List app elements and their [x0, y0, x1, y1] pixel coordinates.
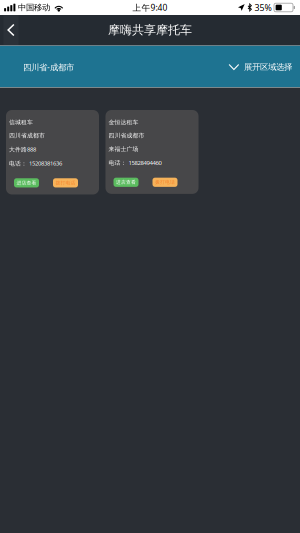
staticText: 进店查看	[116, 179, 136, 185]
button[interactable]: 信城租车	[6, 110, 99, 194]
staticText: 拨打电话	[155, 179, 175, 185]
staticText: 进店查看	[16, 180, 36, 186]
staticText: 来福士广场	[108, 145, 138, 153]
staticText: 上午9:40	[132, 2, 167, 13]
staticText: 信城租车	[9, 118, 33, 126]
button[interactable]: 进店查看	[113, 178, 138, 187]
button[interactable]: 展开区域选择	[228, 62, 292, 72]
staticText: 中国移动	[18, 2, 50, 13]
button[interactable]: 金恒达租车	[105, 110, 198, 194]
button[interactable]: 进店查看	[14, 178, 39, 187]
staticText: 四川省成都市	[108, 132, 144, 139]
staticText: 摩嗨共享摩托车	[108, 22, 192, 37]
staticText: 35%	[254, 1, 271, 13]
button[interactable]: 拨打电话	[152, 178, 177, 187]
staticText: 四川省-成都市	[23, 61, 74, 73]
button[interactable]: 拨打电话	[53, 178, 78, 187]
staticText: 四川省成都市	[9, 132, 45, 139]
staticText: 电话： 15828494460	[108, 159, 161, 167]
staticText: 电话： 15208381636	[9, 159, 62, 167]
staticText: 拨打电话	[55, 180, 75, 186]
staticText: 大件路888	[9, 145, 36, 153]
button[interactable]: 返回	[3, 15, 18, 45]
staticText: 金恒达租车	[108, 118, 138, 126]
staticText: 展开区域选择	[244, 62, 292, 72]
